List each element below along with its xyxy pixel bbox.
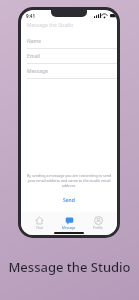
button[interactable]: Chat bbox=[31, 215, 48, 231]
staticText: Email bbox=[27, 53, 40, 60]
button[interactable]: Message bbox=[21, 64, 117, 79]
button[interactable]: Name bbox=[21, 34, 117, 49]
button[interactable]: Profile bbox=[89, 215, 107, 231]
staticText: 9:41 bbox=[26, 13, 35, 19]
staticText: Name bbox=[27, 38, 42, 45]
button[interactable]: Send bbox=[21, 195, 117, 206]
staticText: Message bbox=[27, 68, 48, 75]
button[interactable]: Email bbox=[21, 49, 117, 64]
staticText: Message bbox=[62, 226, 76, 230]
staticText: Message the Studio bbox=[8, 258, 131, 276]
staticText: Message the Studio bbox=[27, 22, 74, 29]
staticText: By sending a message you are consenting … bbox=[26, 173, 112, 188]
staticText: Send bbox=[63, 197, 75, 204]
button[interactable]: Message bbox=[58, 215, 80, 231]
staticText: Profile bbox=[93, 226, 103, 230]
staticText: Chat bbox=[36, 226, 43, 230]
